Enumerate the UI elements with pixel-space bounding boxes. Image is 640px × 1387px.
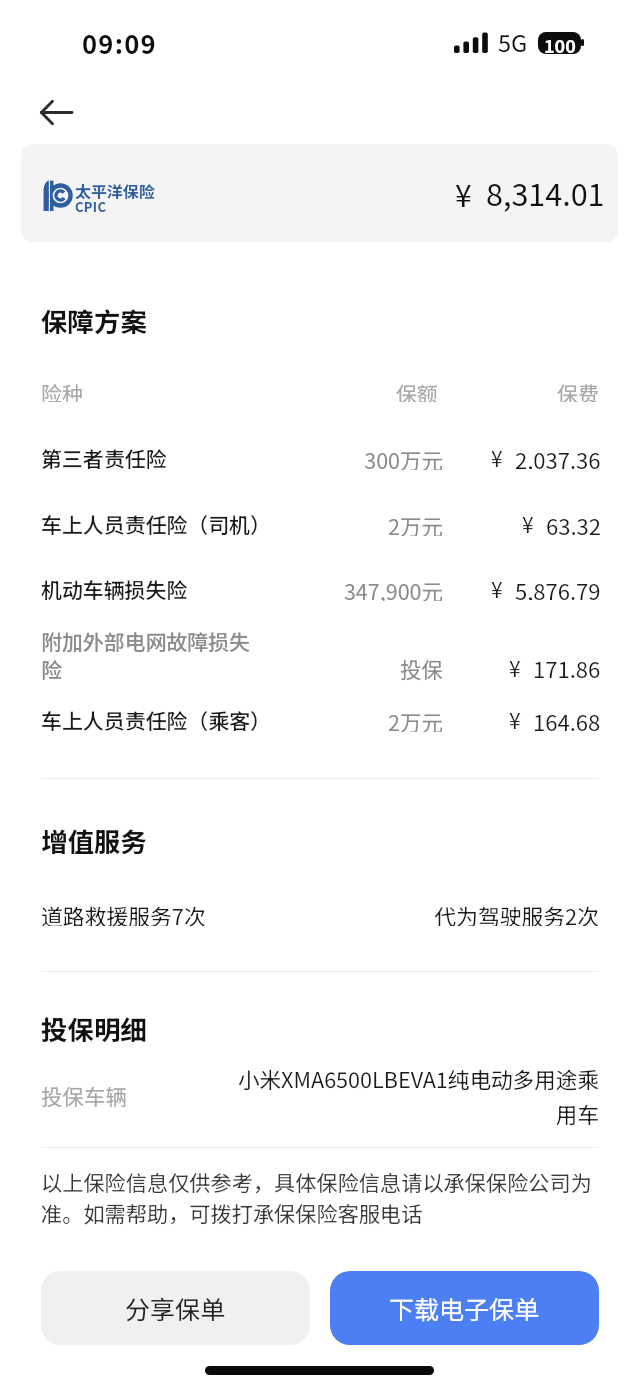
- staticText: 8,314.01: [486, 171, 605, 215]
- staticText: ¥: [491, 574, 503, 600]
- staticText: CPIC: [75, 197, 107, 216]
- staticText: ¥: [455, 172, 472, 215]
- staticText: 小米XMA6500LBEVA1纯电动多用途乘用车: [229, 1063, 599, 1127]
- button[interactable]: 附加外部电网故障损失 险: [0, 607, 640, 699]
- button[interactable]: 车上人员责任险（司机）: [0, 490, 640, 554]
- staticText: 5,876.79: [515, 574, 601, 600]
- staticText: 保额: [318, 378, 438, 402]
- staticText: 投保明细: [41, 1009, 147, 1047]
- staticText: 09:09: [82, 24, 157, 61]
- button[interactable]: 下载电子保单: [330, 1271, 599, 1345]
- staticText: 车上人员责任险（乘客）: [41, 705, 291, 731]
- staticText: 投保: [323, 653, 443, 684]
- staticText: 太平洋保险: [75, 179, 156, 202]
- staticText: 附加外部电网故障损失 险: [41, 626, 291, 680]
- staticText: ¥: [509, 653, 521, 683]
- staticText: ¥: [509, 705, 521, 731]
- staticText: 5G: [498, 25, 528, 59]
- staticText: 2万元: [323, 706, 443, 732]
- staticText: 164.68: [533, 705, 601, 731]
- staticText: 保费: [479, 378, 599, 402]
- button[interactable]: 太平洋保险: [21, 144, 618, 242]
- staticText: 投保车辆: [41, 1080, 128, 1111]
- staticText: 分享保单: [125, 1290, 226, 1326]
- staticText: 300万元: [323, 444, 443, 470]
- staticText: 保障方案: [41, 301, 147, 339]
- button[interactable]: 机动车辆损失险: [0, 555, 640, 619]
- staticText: 第三者责任险: [41, 443, 291, 469]
- button[interactable]: Back: [22, 89, 90, 135]
- staticText: 下载电子保单: [389, 1290, 540, 1326]
- staticText: 2万元: [323, 510, 443, 536]
- button[interactable]: 车上人员责任险（乘客）: [0, 686, 640, 750]
- button[interactable]: 第三者责任险: [0, 424, 640, 488]
- staticText: ¥: [491, 443, 503, 469]
- staticText: 100: [544, 32, 576, 54]
- staticText: ¥: [522, 509, 534, 535]
- staticText: 道路救援服务7次: [41, 900, 206, 926]
- staticText: 车上人员责任险（司机）: [41, 509, 291, 535]
- button[interactable]: 道路救援服务7次: [41, 900, 599, 926]
- staticText: 险种: [41, 378, 83, 402]
- staticText: 347,900元: [323, 575, 443, 601]
- staticText: 代为驾驶服务2次: [399, 900, 599, 926]
- staticText: 以上保险信息仅供参考，具体保险信息请以承保保险公司为准。如需帮助，可拨打承保保险…: [41, 1166, 601, 1228]
- staticText: 63.32: [546, 509, 601, 535]
- staticText: 171.86: [533, 652, 601, 684]
- staticText: 增值服务: [41, 821, 147, 859]
- button[interactable]: 分享保单: [41, 1271, 310, 1345]
- staticText: 2,037.36: [515, 443, 601, 469]
- staticText: 机动车辆损失险: [41, 574, 291, 600]
